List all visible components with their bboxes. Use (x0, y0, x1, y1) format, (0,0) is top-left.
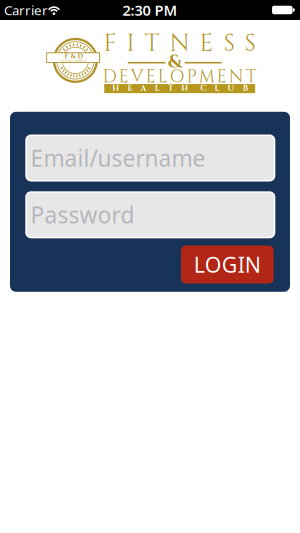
staticText: L (155, 83, 160, 94)
staticText: E (217, 65, 227, 89)
button[interactable]: LOGIN (181, 245, 274, 283)
staticText: T (246, 65, 257, 89)
button[interactable]: Password (26, 192, 275, 238)
staticText: A (141, 83, 147, 94)
staticText: D (103, 65, 117, 89)
staticText: F & D (64, 52, 83, 61)
staticText: E (199, 27, 213, 60)
button[interactable]: Email/username (26, 135, 275, 181)
staticText: L (158, 65, 168, 89)
staticText: I (126, 27, 134, 60)
staticText: L (214, 83, 219, 94)
staticText: LOGIN (194, 250, 261, 279)
staticText: 2:30 PM (122, 0, 177, 20)
staticText: S (244, 27, 255, 60)
staticText: M (199, 65, 215, 89)
staticText: T (144, 27, 159, 60)
staticText: F (103, 27, 116, 60)
staticText: N (169, 27, 189, 60)
staticText: Email/username (31, 143, 206, 173)
staticText: DEVELOPMENT (60, 58, 87, 63)
staticText: H (181, 83, 188, 94)
staticText: Password (31, 200, 135, 230)
staticText: E (146, 65, 156, 89)
staticText: H (112, 83, 119, 94)
staticText: E (127, 83, 132, 94)
staticText: T (168, 83, 173, 94)
staticText: E (119, 65, 129, 89)
staticText: N (229, 65, 244, 89)
staticText: Carrier (4, 1, 48, 19)
staticText: C (200, 83, 206, 94)
staticText: S (223, 27, 234, 60)
staticText: & (168, 50, 183, 74)
staticText: O (170, 65, 185, 89)
staticText: P (187, 65, 197, 89)
staticText: U (228, 83, 235, 94)
staticText: B (243, 83, 248, 94)
staticText: V (131, 65, 144, 89)
